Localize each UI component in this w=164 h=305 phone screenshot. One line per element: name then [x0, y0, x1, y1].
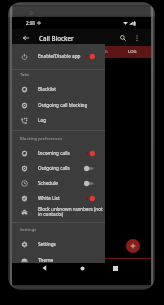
staticText: 2:08	[26, 20, 35, 26]
staticText: Tabs	[20, 72, 30, 78]
staticText: Schedule	[38, 180, 58, 186]
button[interactable]: Theme	[12, 253, 105, 267]
staticText: ING	[100, 49, 108, 55]
staticText: Outgoing call blocking	[38, 102, 88, 108]
button[interactable]: Search	[117, 29, 129, 46]
button[interactable]: Home	[76, 262, 88, 274]
staticText: Blocking preferences	[20, 136, 63, 142]
button[interactable]: Add	[126, 239, 140, 253]
button[interactable]: White List	[12, 191, 105, 205]
button[interactable]: Enable/Disable app	[12, 49, 105, 63]
staticText: Theme	[38, 257, 54, 263]
button[interactable]: More options	[132, 29, 142, 46]
button[interactable]: Outgoing calls	[12, 161, 105, 175]
staticText: Settings	[20, 227, 37, 233]
staticText: LOG	[128, 49, 137, 55]
button[interactable]: Back	[19, 29, 33, 46]
button[interactable]: Outgoing call blocking	[12, 98, 105, 112]
button[interactable]: Log	[12, 113, 105, 127]
staticText: Blacklist	[38, 86, 56, 92]
button[interactable]: Settings	[12, 237, 105, 251]
staticText: Settings	[38, 241, 56, 247]
button[interactable]: Back	[38, 262, 50, 274]
staticText: Outgoing calls	[38, 165, 70, 171]
staticText: Block unknown numbers (not in contacts)	[38, 206, 103, 218]
staticText: Enable/Disable app	[38, 53, 81, 59]
button[interactable]: Blacklist	[12, 82, 105, 96]
button[interactable]: Recents	[109, 262, 121, 274]
staticText: Call Blocker	[39, 34, 74, 42]
button[interactable]: Incoming calls	[12, 146, 105, 160]
staticText: White List	[38, 195, 60, 201]
button[interactable]: Block unknown numbers (not in contacts)	[12, 205, 105, 219]
staticText: Incoming calls	[38, 150, 70, 156]
button[interactable]: Schedule	[12, 176, 105, 190]
staticText: Log	[38, 117, 47, 123]
